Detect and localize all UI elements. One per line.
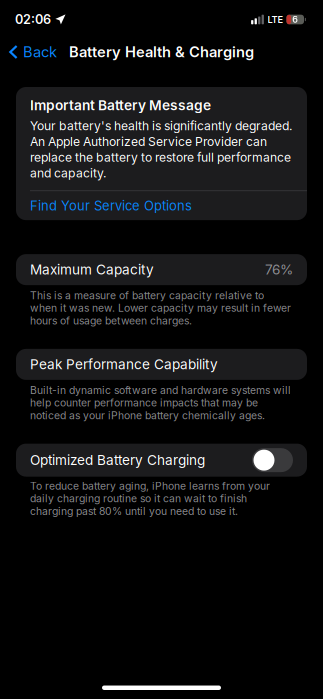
button[interactable]: Find Your Service Options (30, 191, 293, 220)
staticText: 76% (265, 261, 293, 278)
staticText: Maximum Capacity (30, 261, 154, 278)
staticText: Back (23, 43, 57, 61)
staticText: LTE (267, 14, 283, 25)
staticText: This is a measure of battery capacity re… (30, 289, 291, 327)
staticText: Built-in dynamic software and hardware s… (30, 384, 291, 422)
staticText: To reduce battery aging, iPhone learns f… (30, 480, 270, 517)
staticText: Battery Health & Charging (69, 43, 254, 61)
button[interactable]: Back (0, 40, 66, 64)
staticText: 6 (292, 14, 298, 25)
staticText: Optimized Battery Charging (30, 452, 205, 468)
staticText: Peak Performance Capability (30, 356, 218, 373)
staticText: Important Battery Message (30, 97, 211, 114)
staticText: Your battery's health is significantly d… (30, 119, 292, 180)
staticText: 02:06 (15, 12, 51, 27)
button[interactable]: Optimized Battery Charging (252, 448, 293, 472)
staticText: Find Your Service Options (30, 198, 192, 213)
